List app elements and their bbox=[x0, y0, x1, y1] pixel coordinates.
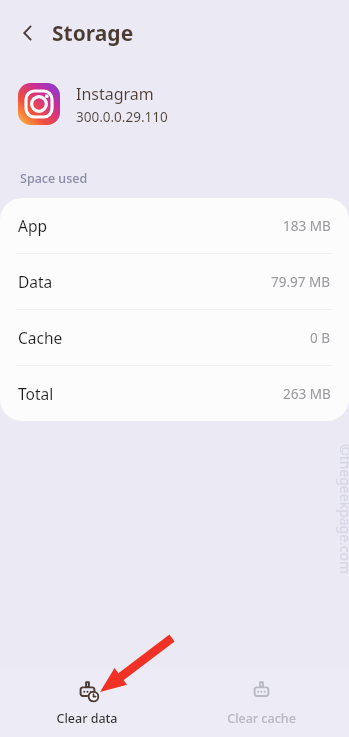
staticText: 0 B bbox=[310, 329, 331, 347]
staticText: App bbox=[18, 215, 47, 236]
staticText: ©thegeekpage.com bbox=[336, 444, 349, 575]
staticText: Instagram bbox=[76, 83, 154, 105]
button[interactable]: App bbox=[0, 198, 349, 253]
button[interactable]: Total bbox=[0, 366, 349, 421]
button[interactable]: Clear data bbox=[0, 674, 174, 733]
button[interactable]: Cache bbox=[0, 310, 349, 365]
button[interactable]: Back bbox=[8, 13, 48, 53]
staticText: 263 MB bbox=[283, 385, 331, 403]
button[interactable]: Clear cache bbox=[174, 674, 349, 733]
staticText: Storage bbox=[52, 19, 134, 48]
staticText: 183 MB bbox=[283, 217, 331, 235]
staticText: Cache bbox=[18, 327, 63, 348]
staticText: Space used bbox=[20, 170, 88, 187]
staticText: 79.97 MB bbox=[271, 273, 331, 291]
staticText: Clear cache bbox=[227, 710, 296, 727]
staticText: Total bbox=[18, 383, 54, 404]
button[interactable]: Data bbox=[0, 254, 349, 309]
staticText: Clear data bbox=[56, 710, 118, 727]
staticText: 300.0.0.29.110 bbox=[76, 108, 168, 126]
staticText: Data bbox=[18, 271, 53, 292]
